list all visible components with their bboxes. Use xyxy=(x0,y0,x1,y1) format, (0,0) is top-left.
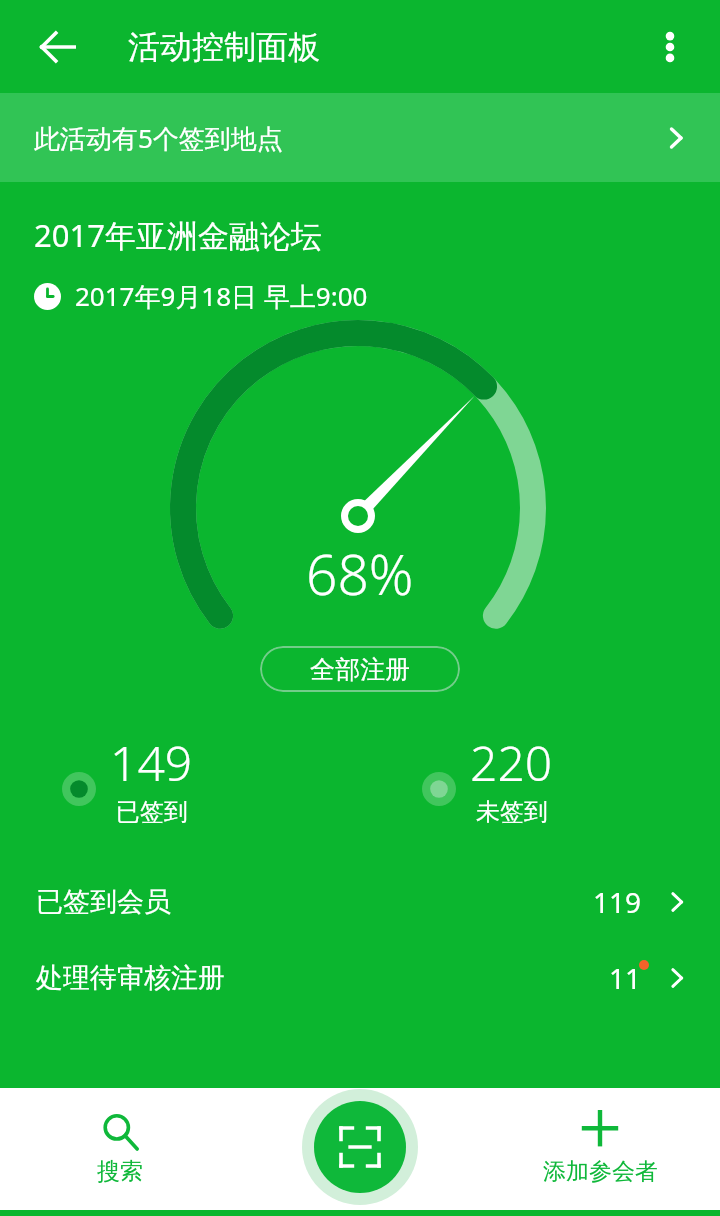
button[interactable]: 搜索 xyxy=(0,1088,240,1210)
button[interactable]: 149 xyxy=(0,730,360,827)
button[interactable]: 已签到会员 xyxy=(0,873,720,931)
staticText: 全部注册 xyxy=(310,654,410,685)
button[interactable]: Scan QR code xyxy=(302,1089,418,1205)
staticText: 2017年亚洲金融论坛 xyxy=(34,214,322,256)
button[interactable]: 此活动有5个签到地点 xyxy=(0,93,720,182)
button[interactable]: More options xyxy=(636,13,704,81)
staticText: 220 xyxy=(470,730,553,795)
staticText: 149 xyxy=(110,730,193,795)
staticText: 处理待审核注册 xyxy=(36,961,609,995)
staticText: 活动控制面板 xyxy=(128,27,320,67)
button[interactable]: 处理待审核注册 xyxy=(0,949,720,1007)
staticText: 2017年9月18日 早上9:00 xyxy=(75,278,368,314)
staticText: 添加参会者 xyxy=(543,1157,658,1186)
button[interactable]: Back xyxy=(20,9,96,85)
staticText: 已签到会员 xyxy=(36,885,593,919)
button[interactable]: 220 xyxy=(360,730,720,827)
staticText: 未签到 xyxy=(476,797,548,827)
button[interactable]: 添加参会者 xyxy=(480,1088,720,1210)
staticText: 119 xyxy=(593,883,642,921)
staticText: 11 xyxy=(609,959,642,997)
staticText: 68% xyxy=(306,536,414,611)
button[interactable]: 全部注册 xyxy=(260,646,460,692)
staticText: 已签到 xyxy=(116,797,188,827)
staticText: 搜索 xyxy=(97,1157,143,1186)
staticText: 此活动有5个签到地点 xyxy=(34,120,662,156)
